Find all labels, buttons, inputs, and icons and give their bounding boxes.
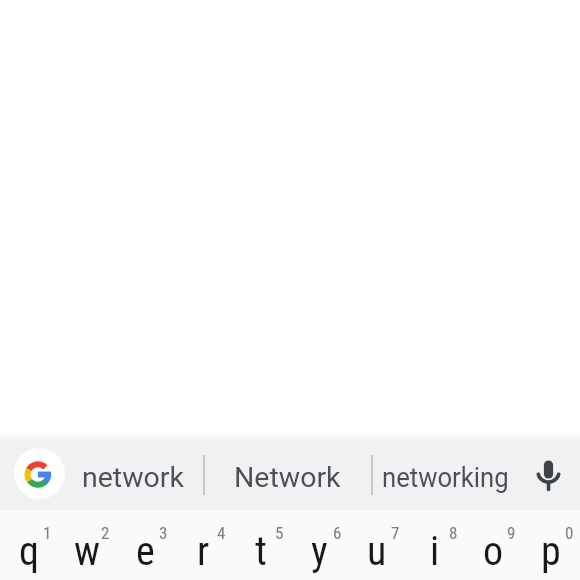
staticText: 4 bbox=[217, 523, 226, 543]
button[interactable] bbox=[14, 448, 65, 499]
button[interactable]: o bbox=[464, 510, 522, 580]
button[interactable]: network bbox=[48, 442, 218, 512]
button[interactable] bbox=[514, 440, 580, 510]
staticText: q bbox=[19, 528, 40, 575]
staticText: 7 bbox=[391, 523, 400, 543]
staticText: 6 bbox=[333, 523, 342, 543]
staticText: 3 bbox=[159, 523, 168, 543]
staticText: o bbox=[483, 528, 504, 575]
staticText: u bbox=[367, 528, 387, 575]
button[interactable]: Network bbox=[202, 442, 372, 512]
button[interactable]: r bbox=[174, 510, 232, 580]
staticText: t bbox=[255, 528, 267, 575]
staticText: 5 bbox=[275, 523, 284, 543]
button[interactable]: networking bbox=[360, 442, 530, 512]
staticText: 9 bbox=[507, 523, 516, 543]
staticText: 2 bbox=[101, 523, 110, 543]
staticText: p bbox=[541, 528, 561, 575]
button[interactable]: u bbox=[348, 510, 406, 580]
staticText: i bbox=[430, 528, 440, 575]
button[interactable]: i bbox=[406, 510, 464, 580]
button[interactable]: q bbox=[0, 510, 58, 580]
button[interactable]: e bbox=[116, 510, 174, 580]
button[interactable]: t bbox=[232, 510, 290, 580]
staticText: e bbox=[136, 528, 155, 575]
staticText: Network bbox=[234, 461, 341, 494]
staticText: 8 bbox=[449, 523, 458, 543]
staticText: 0 bbox=[565, 523, 574, 543]
staticText: 1 bbox=[43, 523, 52, 543]
button[interactable]: y bbox=[290, 510, 348, 580]
staticText: r bbox=[197, 528, 210, 575]
staticText: networking bbox=[382, 461, 509, 494]
button[interactable]: w bbox=[58, 510, 116, 580]
staticText: y bbox=[311, 528, 328, 575]
staticText: w bbox=[74, 528, 100, 575]
staticText: network bbox=[82, 461, 184, 494]
button[interactable]: p bbox=[522, 510, 580, 580]
